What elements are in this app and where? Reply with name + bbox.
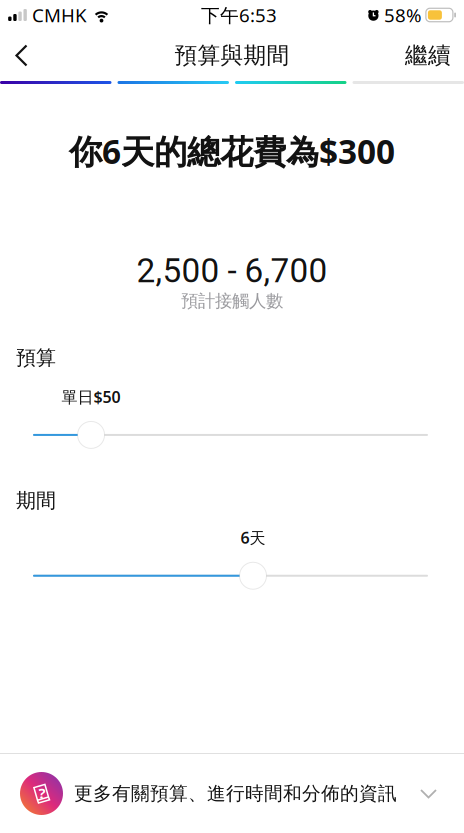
staticText: 6天 (240, 527, 265, 548)
staticText: 繼續 (405, 42, 451, 69)
button[interactable]: 期間 (239, 562, 266, 589)
staticText: 期間 (16, 488, 56, 513)
staticText: 預算 (16, 346, 56, 370)
staticText: ? (38, 783, 45, 803)
staticText: 你6天的總花費為$300 (69, 129, 395, 173)
button[interactable]: 返回 (0, 30, 46, 81)
staticText: 下午6:53 (201, 3, 277, 27)
staticText: 2,500 - 6,700 (136, 251, 327, 290)
staticText: 58% (384, 3, 422, 27)
staticText: 預算與期間 (174, 42, 289, 69)
button[interactable]: 繼續 (391, 30, 464, 81)
staticText: CMHK (32, 3, 87, 27)
button[interactable]: 預算 (78, 421, 105, 448)
staticText: 更多有關預算、進行時間和分佈的資訊 (74, 782, 397, 805)
button[interactable]: ? (0, 754, 464, 833)
staticText: 單日$50 (62, 386, 121, 407)
staticText: 預計接觸人數 (181, 290, 283, 312)
